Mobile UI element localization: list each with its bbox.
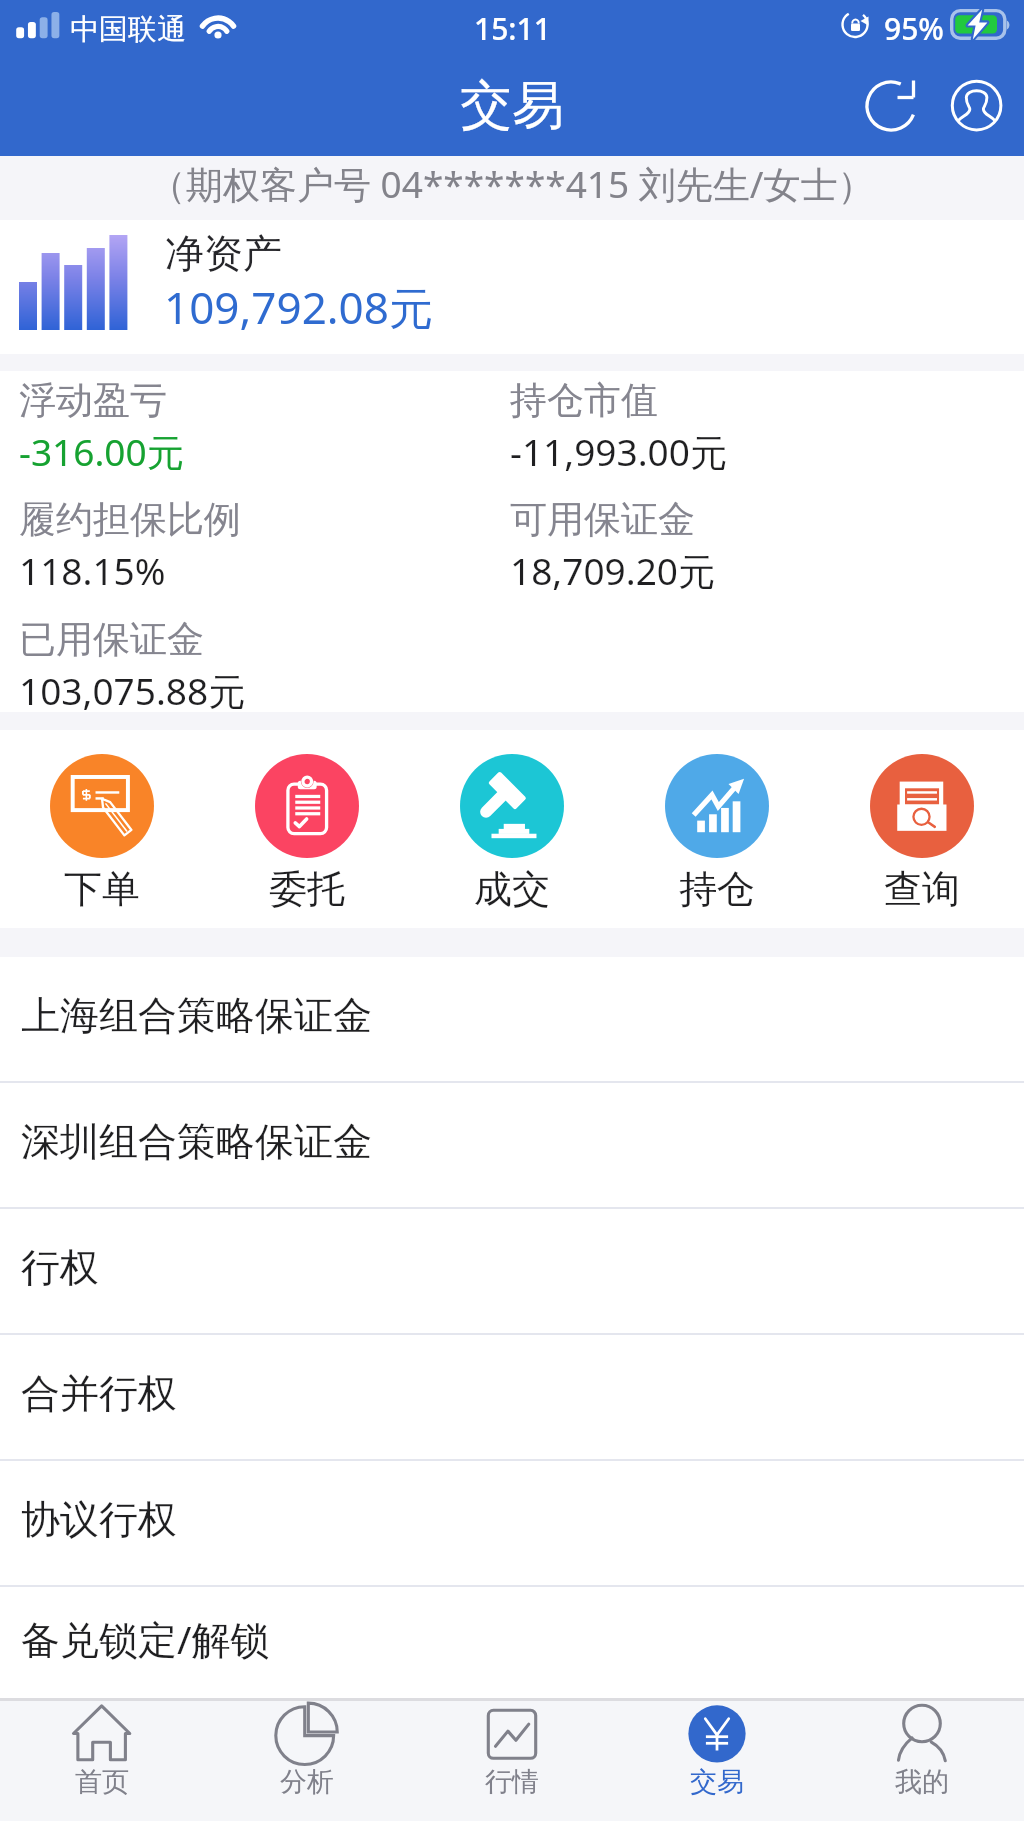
staticText: 103,075.88元 — [19, 665, 246, 716]
staticText: 首页 — [75, 1765, 129, 1799]
staticText: 行权 — [21, 1243, 99, 1292]
staticText: 深圳组合策略保证金 — [21, 1117, 372, 1166]
button[interactable]: 合并行权 — [0, 1335, 1024, 1459]
button[interactable]: 上海组合策略保证金 — [0, 957, 1024, 1081]
button[interactable]: 委托 — [204, 730, 409, 913]
staticText: 已用保证金 — [19, 616, 204, 663]
staticText: 合并行权 — [21, 1369, 177, 1418]
button[interactable]: 持仓 — [614, 730, 819, 913]
staticText: 履约担保比例 — [19, 496, 241, 543]
button[interactable]: 行权 — [0, 1209, 1024, 1333]
button[interactable]: 行情 — [409, 1701, 614, 1799]
button[interactable]: 成交 — [409, 730, 614, 913]
button[interactable]: 净资产 — [0, 220, 1024, 354]
staticText: 下单 — [64, 865, 140, 913]
staticText: 中国联通 — [70, 11, 186, 48]
staticText: 净资产 — [165, 229, 282, 278]
staticText: 18,709.20元 — [510, 545, 715, 596]
staticText: 持仓 — [679, 865, 755, 913]
staticText: 95% — [884, 8, 944, 49]
staticText: 上海组合策略保证金 — [21, 991, 372, 1040]
staticText: -316.00元 — [19, 426, 184, 477]
staticText: 备兑锁定/解锁 — [21, 1612, 270, 1665]
button[interactable]: 备兑锁定/解锁 — [0, 1587, 1024, 1698]
button[interactable]: 交易 — [614, 1701, 819, 1799]
staticText: 持仓市值 — [510, 377, 658, 424]
staticText: 118.15% — [19, 545, 166, 595]
staticText: 交易 — [460, 73, 564, 139]
staticText: 协议行权 — [21, 1495, 177, 1544]
staticText: 成交 — [474, 865, 550, 913]
staticText: 我的 — [895, 1765, 949, 1799]
button[interactable]: Refresh — [851, 56, 931, 156]
button[interactable]: 协议行权 — [0, 1461, 1024, 1585]
button[interactable]: Account — [937, 56, 1017, 156]
button[interactable]: 首页 — [0, 1701, 204, 1799]
button[interactable]: 深圳组合策略保证金 — [0, 1083, 1024, 1207]
staticText: 109,792.08元 — [164, 277, 433, 337]
button[interactable]: 分析 — [204, 1701, 409, 1799]
staticText: -11,993.00元 — [510, 426, 727, 477]
staticText: （期权客户号 04*******415 刘先生/女士） — [149, 158, 875, 209]
staticText: 交易 — [690, 1765, 744, 1799]
staticText: 查询 — [884, 865, 960, 913]
button[interactable]: （期权客户号 04*******415 刘先生/女士） — [0, 156, 1024, 220]
staticText: 分析 — [280, 1765, 334, 1799]
button[interactable]: 我的 — [819, 1701, 1024, 1799]
staticText: 15:11 — [474, 8, 551, 49]
staticText: 委托 — [269, 865, 345, 913]
button[interactable]: 查询 — [819, 730, 1024, 913]
staticText: 浮动盈亏 — [19, 377, 167, 424]
staticText: 行情 — [485, 1765, 539, 1799]
button[interactable]: 下单 — [0, 730, 204, 913]
staticText: 可用保证金 — [510, 496, 695, 543]
